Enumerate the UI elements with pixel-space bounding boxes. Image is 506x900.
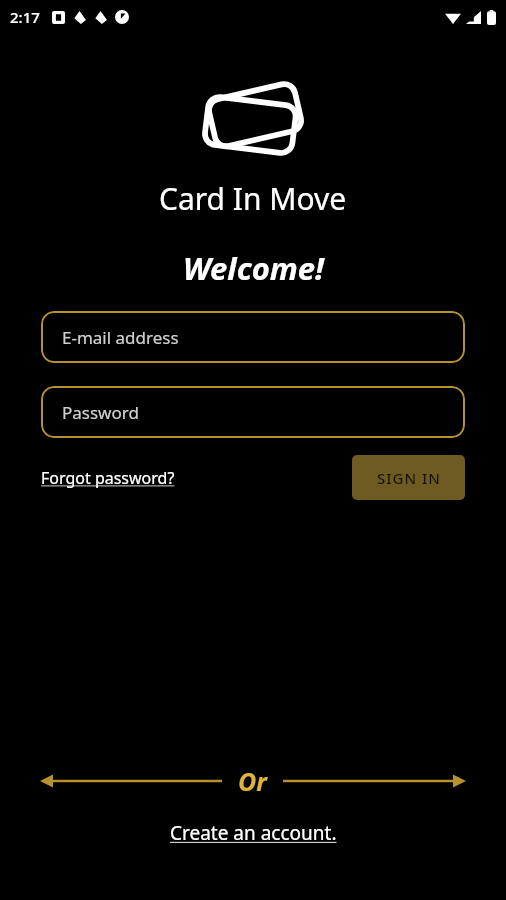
staticText: Or bbox=[238, 764, 267, 798]
staticText: Welcome! bbox=[183, 247, 324, 289]
staticText: E-mail address bbox=[62, 326, 179, 349]
button[interactable]: Create an account. bbox=[162, 814, 345, 852]
staticText: SIGN IN bbox=[377, 468, 441, 488]
staticText: Create an account. bbox=[170, 820, 337, 846]
staticText: Card In Move bbox=[159, 178, 347, 219]
button[interactable]: Password bbox=[41, 386, 465, 438]
staticText: 2:17 bbox=[10, 7, 40, 27]
button[interactable]: Forgot password? bbox=[41, 461, 175, 495]
button[interactable]: SIGN IN bbox=[352, 455, 465, 500]
button[interactable]: E-mail address bbox=[41, 311, 465, 363]
staticText: Password bbox=[62, 401, 139, 424]
staticText: Forgot password? bbox=[41, 467, 175, 489]
other: Card In Move logo bbox=[198, 78, 308, 164]
